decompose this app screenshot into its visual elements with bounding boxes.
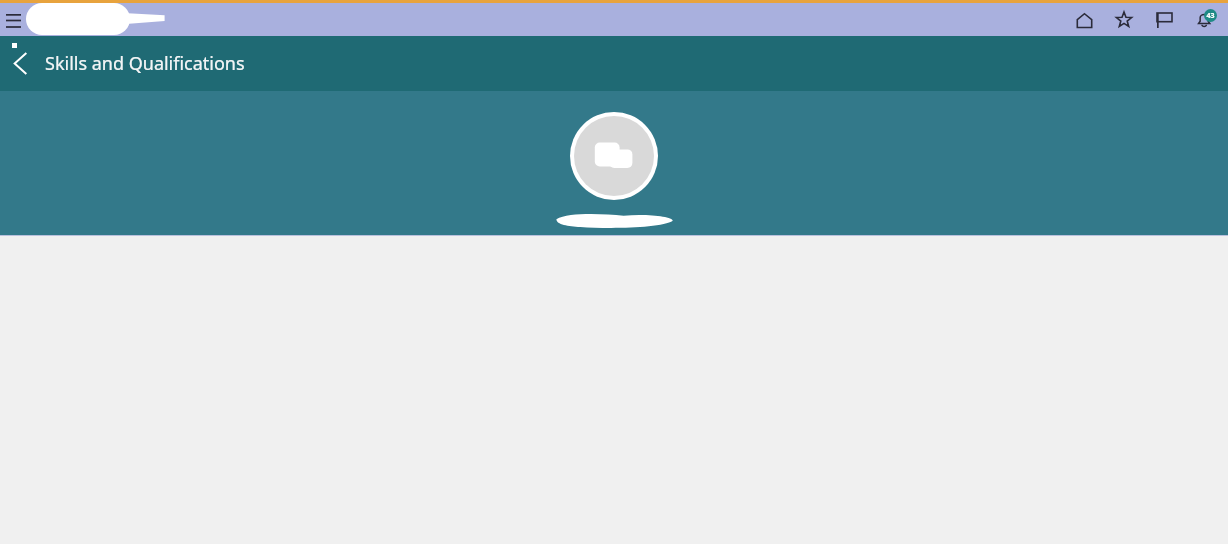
button[interactable]: Notifications, 43 unread bbox=[1190, 6, 1218, 34]
button[interactable]: Favorites bbox=[1110, 6, 1138, 34]
staticText: 43 bbox=[1206, 11, 1215, 21]
button[interactable]: Home bbox=[1070, 6, 1098, 34]
button[interactable]: Menu bbox=[1, 8, 25, 32]
button[interactable]: Flag bbox=[1150, 6, 1178, 34]
button[interactable]: Profile photo bbox=[574, 116, 654, 196]
button[interactable]: Back bbox=[0, 36, 40, 91]
staticText: Skills and Qualifications bbox=[45, 51, 245, 76]
